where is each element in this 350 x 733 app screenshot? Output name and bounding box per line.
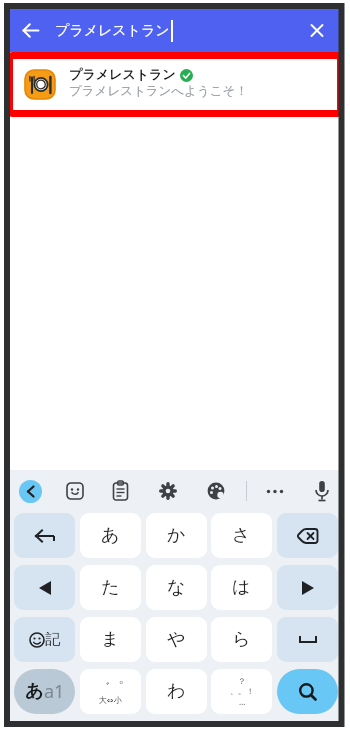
staticText: や: [167, 628, 186, 651]
staticText: あ: [101, 524, 120, 547]
button[interactable]: あ: [14, 669, 75, 714]
button[interactable]: [277, 669, 338, 714]
button[interactable]: ら: [211, 617, 272, 662]
staticText: プラメレストラン: [69, 66, 176, 82]
staticText: わ: [167, 680, 186, 703]
button[interactable]: か: [146, 513, 207, 558]
staticText: ま: [101, 628, 120, 651]
button[interactable]: な: [146, 565, 207, 610]
button[interactable]: [277, 565, 338, 610]
button[interactable]: た: [80, 565, 141, 610]
button[interactable]: [277, 617, 338, 662]
staticText: ゛゜: [97, 679, 124, 695]
button[interactable]: は: [211, 565, 272, 610]
button[interactable]: [14, 565, 75, 610]
staticText: な: [167, 576, 186, 599]
staticText: ？: [238, 676, 246, 686]
staticText: プラメレストラン: [55, 22, 170, 40]
staticText: a1: [44, 679, 65, 704]
button[interactable]: [277, 513, 338, 558]
staticText: 、。！: [230, 686, 254, 696]
staticText: プラメレストランへようこそ！: [69, 83, 248, 99]
button[interactable]: プラメレストラン: [9, 52, 339, 117]
button[interactable]: や: [146, 617, 207, 662]
staticText: は: [232, 576, 251, 599]
button[interactable]: 記: [14, 617, 75, 662]
button[interactable]: [19, 480, 42, 503]
button[interactable]: わ: [146, 669, 207, 714]
staticText: 大⇔小: [99, 695, 122, 705]
button[interactable]: [303, 17, 331, 45]
staticText: ら: [232, 628, 251, 651]
button[interactable]: ゛゜: [80, 669, 141, 714]
staticText: あ: [25, 680, 44, 703]
button[interactable]: [17, 17, 45, 45]
button[interactable]: [14, 513, 75, 558]
button[interactable]: さ: [211, 513, 272, 558]
staticText: …: [239, 696, 246, 707]
staticText: た: [101, 576, 120, 599]
button[interactable]: ま: [80, 617, 141, 662]
staticText: 記: [45, 630, 60, 649]
staticText: か: [167, 524, 186, 547]
staticText: さ: [232, 524, 251, 547]
button[interactable]: ？: [211, 669, 272, 714]
button[interactable]: あ: [80, 513, 141, 558]
